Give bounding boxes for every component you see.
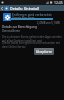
staticText: Entfernen wird vorbereitet <box>12 13 52 17</box>
staticText: 12:45 <box>54 0 63 5</box>
staticText: Die zu deinem Konto gehörenden Apps werd… <box>2 35 63 43</box>
staticText: Deinstallieren <box>2 29 21 33</box>
staticText: Google Play Store <box>12 16 35 20</box>
staticText: Dieses Gerät ist registriert und verbund… <box>2 41 63 49</box>
button[interactable]: Back <box>0 5 4 11</box>
staticText: Details: Uninstall <box>10 6 39 11</box>
staticText: Akzeptieren <box>36 50 53 54</box>
staticText: Details zur Berechtigung <box>2 25 37 29</box>
button[interactable]: Akzeptieren <box>34 48 54 55</box>
staticText: 2,4 MB von 5,1 MB <box>37 21 60 25</box>
